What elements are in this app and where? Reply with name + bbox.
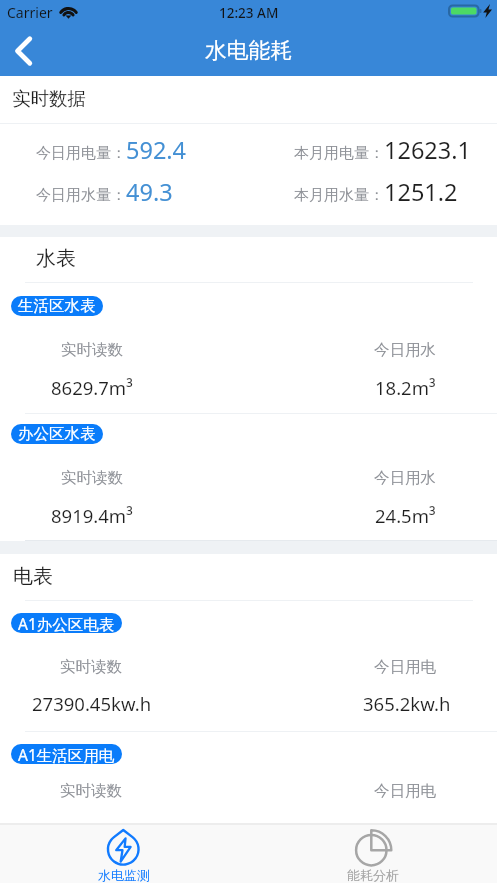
staticText: 办公区水表 xyxy=(18,424,96,444)
button[interactable]: 水电监测 xyxy=(0,823,248,883)
staticText: 今日用水 xyxy=(374,468,436,488)
button[interactable]: A1生活区用电 xyxy=(11,744,122,764)
staticText: 今日用水 xyxy=(374,340,436,360)
staticText: 本月用水量： xyxy=(294,186,384,205)
staticText: 24.5m³ xyxy=(375,503,436,528)
staticText: 水电能耗 xyxy=(205,37,293,64)
staticText: 今日用水量： xyxy=(36,186,126,205)
staticText: 592.4 xyxy=(126,134,187,166)
staticText: 8629.7m³ xyxy=(51,375,133,400)
staticText: 实时读数 xyxy=(60,657,122,677)
staticText: 今日用电 xyxy=(374,781,436,801)
staticText: 本月用电量： xyxy=(294,144,384,163)
staticText: 49.3 xyxy=(126,176,173,208)
staticText: 水表 xyxy=(36,246,76,271)
staticText: 实时读数 xyxy=(61,468,123,488)
staticText: 今日用电量： xyxy=(36,144,126,163)
staticText: 实时数据 xyxy=(12,87,86,110)
staticText: 12:23 AM xyxy=(219,4,279,22)
staticText: 12623.1 xyxy=(384,134,471,166)
staticText: 实时读数 xyxy=(61,340,123,360)
staticText: 365.2kw.h xyxy=(363,691,451,716)
staticText: Carrier xyxy=(7,3,53,22)
staticText: 1251.2 xyxy=(384,176,458,208)
button[interactable]: 生活区水表 xyxy=(11,296,103,316)
staticText: 水电监测 xyxy=(98,867,150,883)
button[interactable]: 办公区水表 xyxy=(11,424,103,444)
staticText: 27390.45kw.h xyxy=(32,691,152,716)
staticText: 实时读数 xyxy=(60,781,122,801)
button[interactable]: 能耗分析 xyxy=(248,823,497,883)
staticText: 今日用电 xyxy=(374,657,436,677)
button[interactable]: A1办公区电表 xyxy=(11,613,122,633)
staticText: A1生活区用电 xyxy=(18,744,115,764)
button[interactable]: Back xyxy=(0,28,46,74)
staticText: 能耗分析 xyxy=(347,867,399,883)
staticText: 8919.4m³ xyxy=(51,503,133,528)
staticText: 生活区水表 xyxy=(18,296,96,316)
staticText: 电表 xyxy=(13,564,53,589)
staticText: A1办公区电表 xyxy=(18,613,115,633)
staticText: 18.2m³ xyxy=(375,375,436,400)
